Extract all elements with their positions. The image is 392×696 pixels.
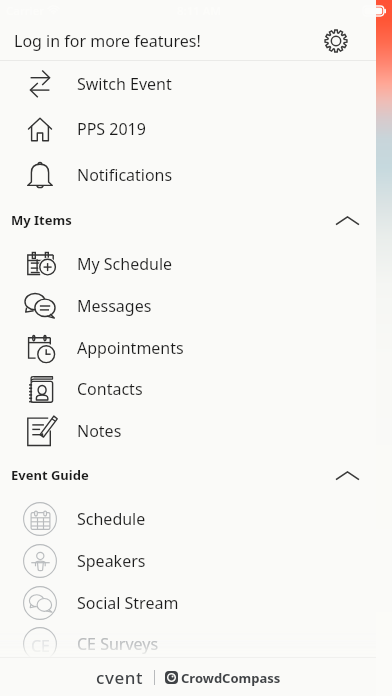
button[interactable]: Notes xyxy=(0,410,376,452)
button[interactable]: Appointments xyxy=(0,327,376,369)
staticText: Schedule xyxy=(77,508,146,530)
button[interactable]: Social Stream xyxy=(0,582,376,624)
staticText: CE Surveys xyxy=(77,633,159,655)
staticText: Social Stream xyxy=(77,592,179,614)
staticText: Event Guide xyxy=(11,466,332,484)
button[interactable]: Schedule xyxy=(0,498,376,540)
button[interactable]: CE xyxy=(0,623,376,665)
other: Collapse Event Guide xyxy=(332,460,362,490)
staticText: Notes xyxy=(77,420,122,442)
button[interactable]: Switch Event xyxy=(0,63,376,105)
button[interactable]: Speakers xyxy=(0,540,376,582)
button[interactable]: Notifications xyxy=(0,154,376,196)
staticText: CrowdCompass xyxy=(181,669,281,687)
button[interactable]: Event Guide xyxy=(0,454,376,496)
button[interactable]: Messages xyxy=(0,285,376,327)
button[interactable]: Settings xyxy=(317,22,355,60)
other: Collapse My Items xyxy=(332,205,362,235)
staticText: Log in for more features! xyxy=(14,30,317,52)
staticText: CE xyxy=(31,635,50,654)
staticText: Messages xyxy=(77,295,152,317)
button[interactable]: My Schedule xyxy=(0,243,376,285)
button[interactable]: My Items xyxy=(0,199,376,241)
staticText: cvent xyxy=(96,666,144,689)
staticText: Speakers xyxy=(77,550,146,572)
staticText: Notifications xyxy=(77,164,173,186)
staticText: PPS 2019 xyxy=(77,118,146,140)
staticText: My Schedule xyxy=(77,253,173,275)
button[interactable]: Contacts xyxy=(0,368,376,410)
staticText: My Items xyxy=(11,211,332,229)
staticText: Contacts xyxy=(77,378,143,400)
staticText: Switch Event xyxy=(77,73,172,95)
button[interactable]: PPS 2019 xyxy=(0,108,376,150)
staticText: Appointments xyxy=(77,337,184,359)
